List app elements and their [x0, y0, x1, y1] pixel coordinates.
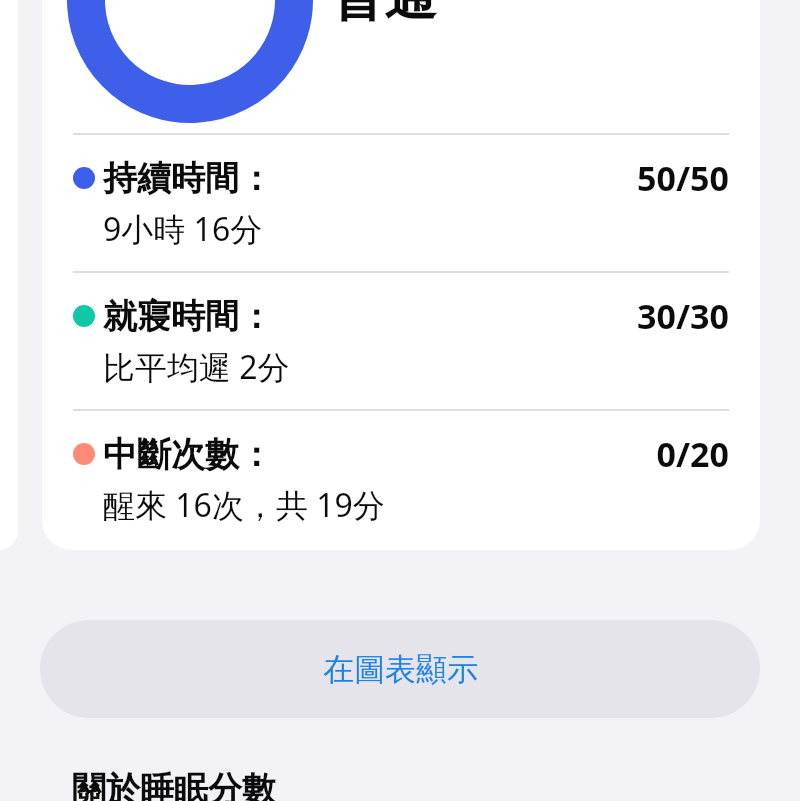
button[interactable]: 持續時間： [42, 135, 760, 271]
staticText: 50/50 [637, 155, 729, 201]
staticText: 普通 [332, 0, 436, 30]
staticText: 醒來 16次，共 19分 [103, 483, 385, 527]
button[interactable]: 在圖表顯示 [40, 620, 760, 718]
staticText: 中斷次數： [103, 433, 273, 476]
button[interactable]: 就寢時間： [42, 273, 760, 409]
staticText: 30/30 [637, 293, 729, 339]
staticText: 就寢時間： [103, 295, 273, 338]
staticText: 關於睡眠分數 [72, 768, 276, 801]
staticText: 0/20 [656, 431, 729, 477]
staticText: 在圖表顯示 [323, 650, 478, 689]
button[interactable]: 中斷次數： [42, 411, 760, 547]
staticText: 持續時間： [103, 157, 273, 200]
staticText: 9小時 16分 [103, 207, 263, 251]
staticText: 比平均遲 2分 [103, 345, 290, 389]
